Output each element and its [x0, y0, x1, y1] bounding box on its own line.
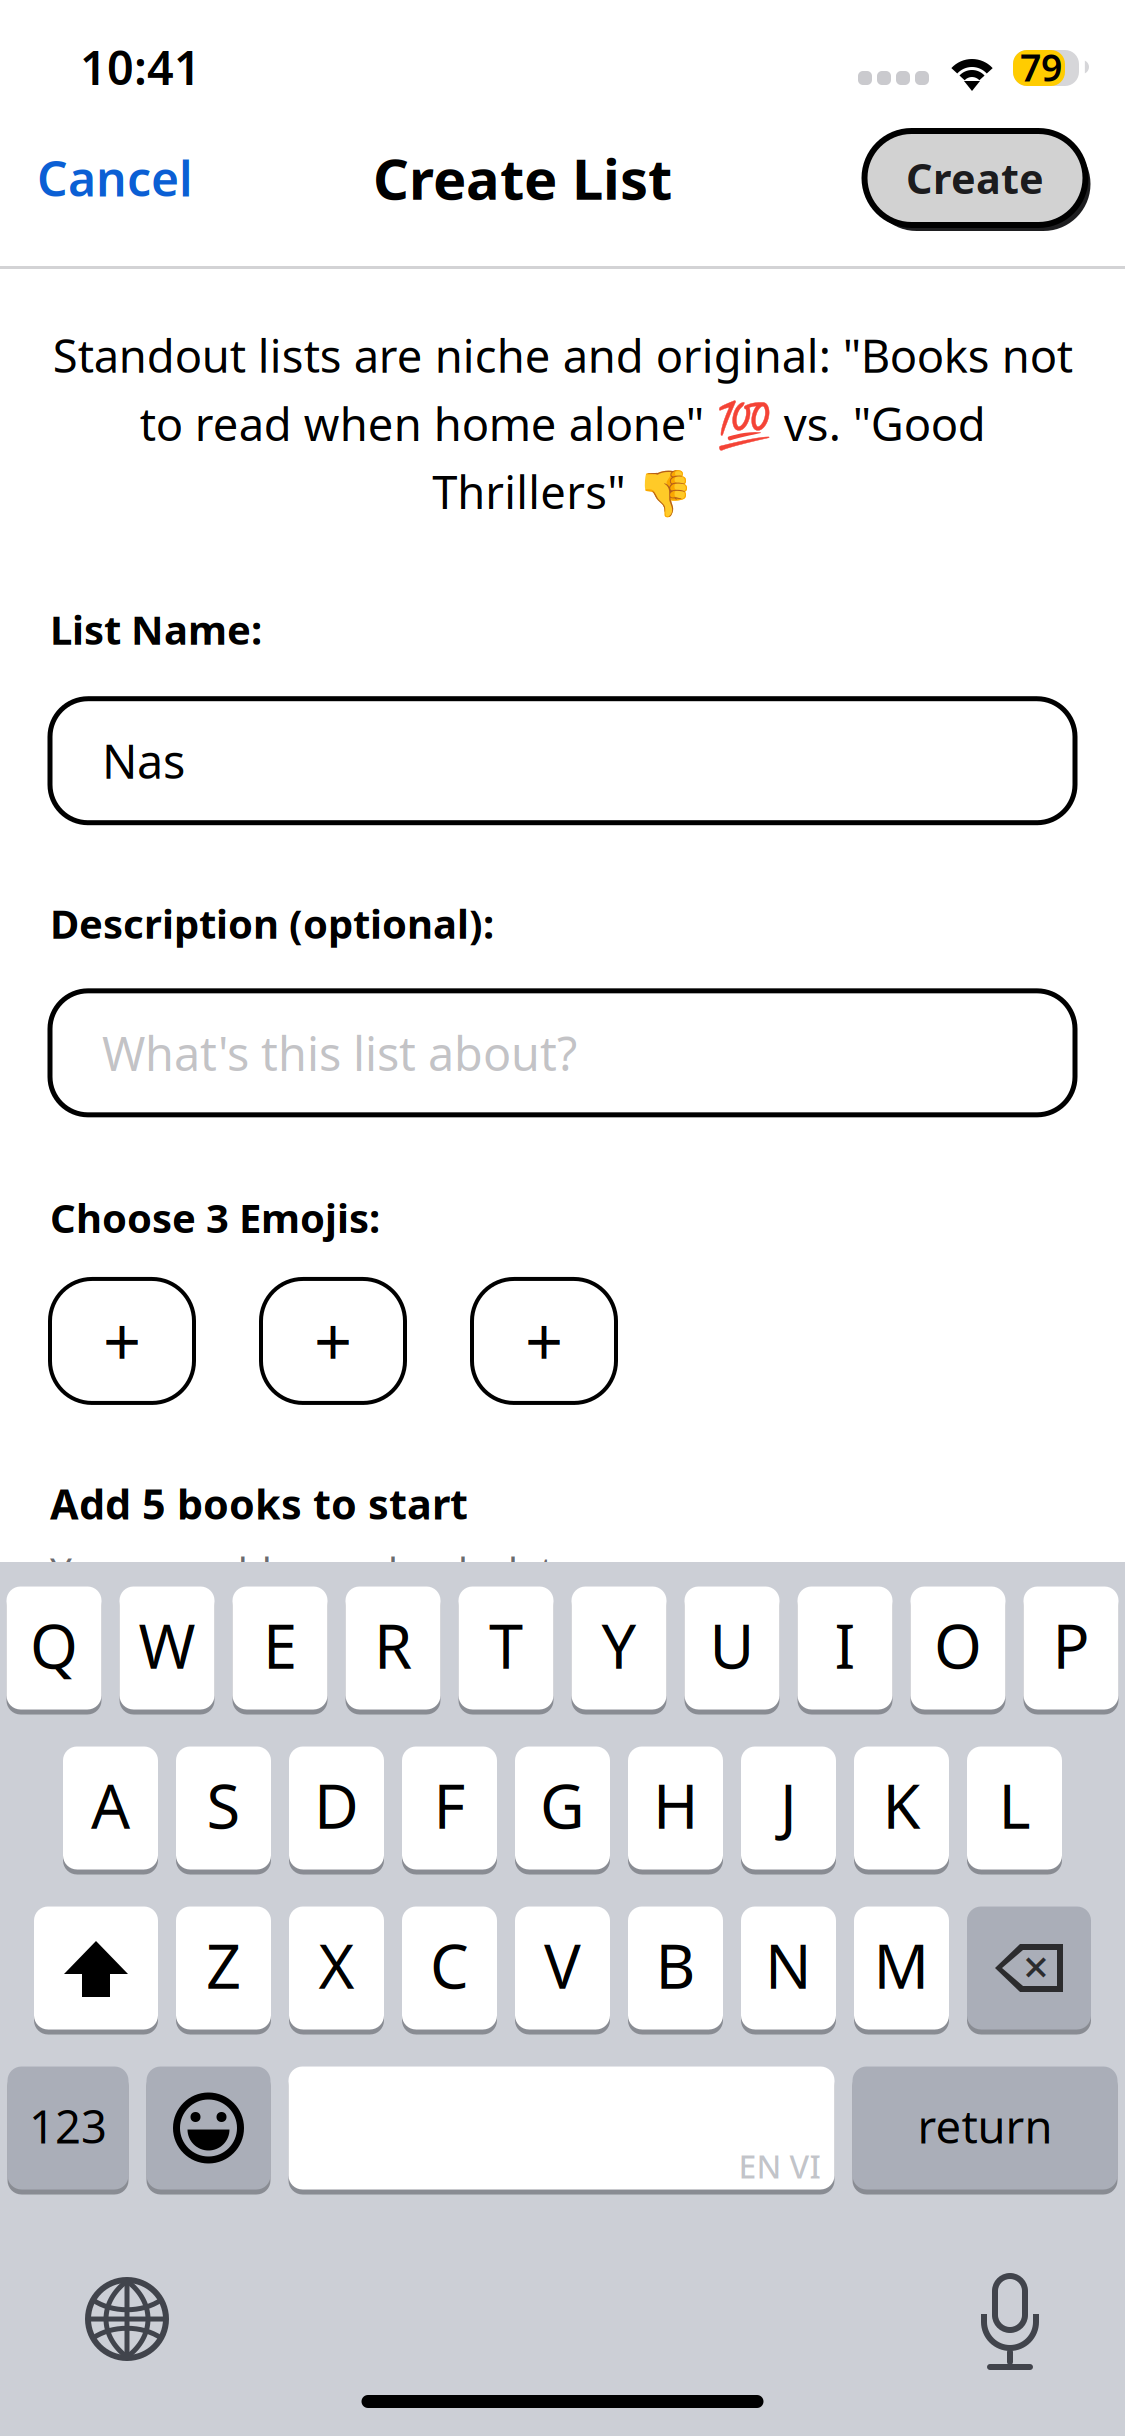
button[interactable]: K — [854, 1744, 949, 1872]
staticText: Description (optional): — [50, 897, 494, 950]
staticText: J — [780, 1764, 797, 1846]
button[interactable]: Next keyboard — [86, 2278, 168, 2360]
staticText: + — [103, 1297, 141, 1385]
button[interactable]: G — [515, 1744, 610, 1872]
button[interactable]: T — [458, 1584, 553, 1712]
staticText: I — [834, 1604, 855, 1686]
staticText: Z — [206, 1924, 241, 2006]
staticText: What's this list about? — [102, 1022, 577, 1084]
button[interactable]: Shift — [34, 1904, 158, 2032]
button[interactable]: Create — [859, 136, 1091, 244]
button[interactable]: M — [854, 1904, 949, 2032]
button[interactable]: Cancel — [27, 134, 203, 246]
button[interactable]: H — [628, 1744, 723, 1872]
staticText: U — [709, 1604, 754, 1686]
staticText: Choose 3 Emojis: — [50, 1191, 380, 1244]
staticText: EN VI — [738, 2145, 820, 2187]
staticText: M — [873, 1924, 929, 2006]
staticText: You can add more books later — [50, 1545, 592, 1596]
staticText: Create — [906, 151, 1044, 205]
staticText: G — [540, 1764, 585, 1846]
button[interactable]: U — [684, 1584, 779, 1712]
staticText: Cancel — [37, 146, 193, 210]
staticText: Y — [601, 1604, 636, 1686]
staticText: C — [430, 1924, 469, 2006]
staticText: 10:41 — [80, 36, 201, 98]
staticText: H — [653, 1764, 698, 1846]
button[interactable]: P — [1023, 1584, 1118, 1712]
staticText: E — [263, 1604, 297, 1686]
button[interactable]: Q — [6, 1584, 101, 1712]
button[interactable]: I — [797, 1584, 892, 1712]
staticText: R — [374, 1604, 412, 1686]
button[interactable]: O — [910, 1584, 1005, 1712]
button[interactable]: W — [119, 1584, 214, 1712]
staticText: V — [544, 1924, 581, 2006]
button[interactable]: F — [402, 1744, 497, 1872]
button[interactable]: B — [628, 1904, 723, 2032]
staticText: Q — [30, 1604, 78, 1686]
button[interactable]: L — [967, 1744, 1062, 1872]
staticText: 123 — [29, 2096, 107, 2156]
staticText: O — [934, 1604, 982, 1686]
staticText: 79 — [1020, 42, 1062, 92]
staticText: D — [314, 1764, 359, 1846]
staticText: X — [318, 1924, 354, 2006]
staticText: return — [917, 2096, 1052, 2156]
button[interactable]: Delete — [967, 1904, 1091, 2032]
staticText: + — [314, 1297, 352, 1385]
button[interactable]: Add emoji — [50, 1279, 194, 1403]
button[interactable]: Add emoji — [472, 1279, 616, 1403]
staticText: × — [1023, 1936, 1049, 1996]
button[interactable]: N — [741, 1904, 836, 2032]
button[interactable]: Emoji — [146, 2064, 270, 2192]
button[interactable]: Z — [176, 1904, 271, 2032]
staticText: K — [882, 1764, 920, 1846]
button[interactable]: A — [63, 1744, 158, 1872]
staticText: P — [1052, 1604, 1089, 1686]
staticText: Create List — [373, 141, 672, 215]
button[interactable]: D — [289, 1744, 384, 1872]
button[interactable]: Add emoji — [261, 1279, 405, 1403]
button[interactable]: V — [515, 1904, 610, 2032]
staticText: T — [489, 1604, 523, 1686]
button[interactable]: Y — [571, 1584, 666, 1712]
staticText: + — [525, 1297, 563, 1385]
staticText: F — [433, 1764, 465, 1846]
button[interactable]: X — [289, 1904, 384, 2032]
staticText: A — [91, 1764, 130, 1846]
button[interactable]: Space — [288, 2064, 834, 2192]
button[interactable]: E — [232, 1584, 327, 1712]
button[interactable]: Dictate — [981, 2276, 1039, 2362]
button[interactable]: J — [741, 1744, 836, 1872]
staticText: Nas — [102, 730, 185, 792]
button[interactable]: C — [402, 1904, 497, 2032]
button[interactable]: return — [852, 2064, 1117, 2192]
button[interactable]: 123 — [7, 2064, 128, 2192]
staticText: N — [765, 1924, 812, 2006]
staticText: B — [655, 1924, 695, 2006]
button[interactable]: R — [345, 1584, 440, 1712]
staticText: Add 5 books to start — [50, 1476, 468, 1531]
button[interactable]: S — [176, 1744, 271, 1872]
staticText: W — [138, 1604, 195, 1686]
staticText: S — [206, 1764, 240, 1846]
staticText: List Name: — [50, 603, 262, 656]
staticText: Standout lists are niche and original: "… — [52, 325, 1072, 522]
staticText: L — [998, 1764, 1030, 1846]
